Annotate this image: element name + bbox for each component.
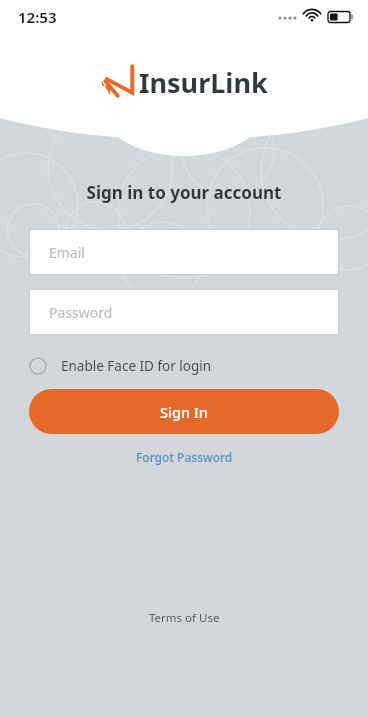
- staticText: Enable Face ID for login: [61, 357, 212, 375]
- staticText: Sign in to your account: [29, 181, 339, 204]
- button[interactable]: Forgot Password: [126, 446, 243, 468]
- staticText: Password: [49, 303, 113, 322]
- staticText: InsurLink: [139, 64, 268, 101]
- staticText: Forgot Password: [136, 449, 233, 465]
- button[interactable]: Terms of Use: [137, 605, 232, 631]
- staticText: Sign In: [160, 402, 208, 422]
- button[interactable]: Email: [30, 230, 338, 274]
- staticText: 12:53: [18, 7, 57, 27]
- staticText: Email: [49, 243, 85, 262]
- button[interactable]: Sign In: [29, 389, 339, 434]
- button[interactable]: Enable Face ID for login: [29, 353, 339, 379]
- staticText: Terms of Use: [149, 610, 220, 626]
- button[interactable]: Password: [30, 290, 338, 334]
